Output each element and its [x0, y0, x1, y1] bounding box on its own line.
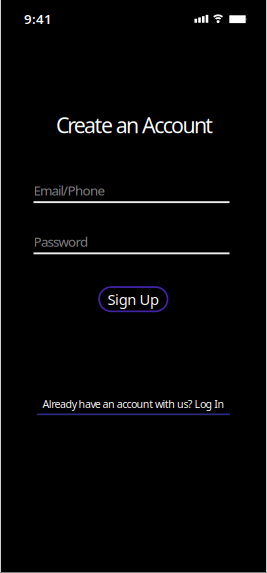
- button[interactable]: Password: [33, 233, 229, 254]
- staticText: Create an Account: [56, 111, 213, 139]
- button[interactable]: Email/Phone: [33, 181, 229, 203]
- button[interactable]: Sign Up: [99, 287, 168, 311]
- button[interactable]: Already have an account with us? Log In: [37, 397, 230, 415]
- staticText: Email/Phone: [33, 181, 105, 199]
- staticText: Password: [33, 233, 88, 250]
- staticText: Sign Up: [107, 289, 159, 309]
- staticText: 9:41: [24, 10, 52, 28]
- staticText: Already have an account with us? Log In: [42, 397, 225, 411]
